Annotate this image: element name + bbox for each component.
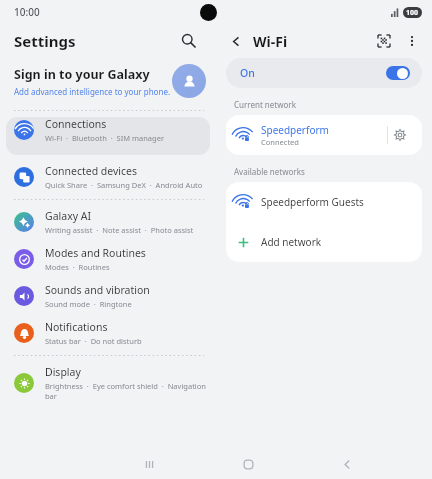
staticText: 100 — [406, 8, 419, 18]
staticText: Connections — [45, 117, 107, 131]
staticText: Display — [45, 365, 81, 379]
button[interactable]: Connections — [6, 117, 210, 155]
staticText: Sounds and vibration — [45, 283, 150, 297]
staticText: Notifications — [45, 320, 108, 334]
staticText: Speedperform Guests — [261, 195, 364, 209]
button[interactable]: Back — [226, 31, 246, 51]
button[interactable]: Recents — [100, 449, 199, 479]
staticText: Available networks — [234, 166, 305, 177]
button[interactable]: Galaxy AI — [0, 209, 216, 235]
staticText: Add network — [261, 235, 322, 249]
button[interactable]: Sign in to your Galaxy — [0, 58, 216, 104]
button[interactable]: Connected devices — [0, 164, 216, 190]
button[interactable]: Sounds and vibration — [0, 283, 216, 309]
staticText: Status bar · Do not disturb — [45, 336, 142, 346]
staticText: Modes · Routines — [45, 262, 110, 272]
button[interactable]: On — [226, 58, 422, 88]
button[interactable]: More options — [402, 31, 422, 51]
staticText: Connected devices — [45, 164, 138, 178]
button[interactable]: Speedperform Guests — [226, 182, 422, 222]
staticText: Connected — [261, 137, 299, 147]
button[interactable]: Home — [199, 449, 298, 479]
staticText: Current network — [234, 99, 296, 110]
button[interactable]: Modes and Routines — [0, 246, 216, 272]
staticText: Settings — [14, 31, 76, 51]
button[interactable]: Search — [178, 30, 200, 52]
staticText: Wi-Fi · Bluetooth · SIM manager — [45, 133, 164, 143]
button[interactable]: Scan QR code — [374, 31, 394, 51]
button[interactable]: Back — [298, 449, 397, 479]
staticText: Quick Share · Samsung DeX · Android Auto — [45, 180, 203, 190]
button[interactable]: Network settings — [388, 123, 412, 147]
button[interactable]: Add network — [226, 222, 422, 262]
button[interactable]: Display — [0, 365, 216, 401]
staticText: Add advanced intelligence to your phone. — [14, 86, 171, 97]
staticText: Sign in to your Galaxy — [14, 66, 150, 83]
staticText: Speedperform — [261, 123, 329, 137]
staticText: Sound mode · Ringtone — [45, 299, 132, 309]
staticText: On — [240, 66, 255, 80]
staticText: Modes and Routines — [45, 246, 146, 260]
staticText: Wi-Fi — [253, 32, 288, 51]
button[interactable]: Notifications — [0, 320, 216, 346]
staticText: Galaxy AI — [45, 209, 92, 223]
staticText: 10:00 — [14, 5, 40, 19]
button[interactable]: Speedperform — [226, 115, 422, 155]
staticText: Writing assist · Note assist · Photo ass… — [45, 225, 194, 235]
staticText: Brightness · Eye comfort shield · Naviga… — [45, 381, 206, 401]
